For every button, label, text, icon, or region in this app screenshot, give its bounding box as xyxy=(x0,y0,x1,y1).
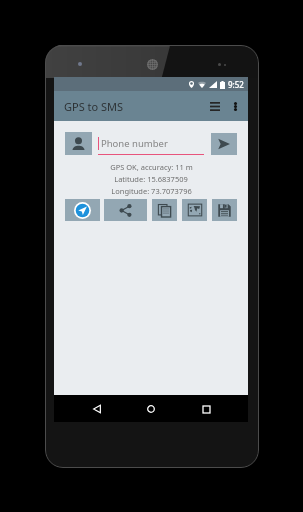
button[interactable]: Recents xyxy=(194,397,218,421)
staticText: GPS OK, accuracy: 11 m xyxy=(110,162,193,172)
button[interactable]: More options xyxy=(226,92,244,120)
staticText: GPS to SMS xyxy=(64,99,124,114)
staticText: Phone number xyxy=(101,137,168,150)
staticText: Longitude: 73.7073796 xyxy=(111,186,192,196)
button[interactable]: History xyxy=(204,92,226,120)
button[interactable]: Send xyxy=(211,133,237,155)
button[interactable]: Pick contact xyxy=(65,132,92,155)
button[interactable]: Copy xyxy=(152,199,177,221)
staticText: Latitude: 15.6837509 xyxy=(114,174,188,184)
button[interactable]: Show on map xyxy=(182,199,207,221)
button[interactable]: Save xyxy=(212,199,237,221)
button[interactable]: Share xyxy=(104,199,147,221)
button[interactable]: Home xyxy=(139,397,163,421)
button[interactable]: Get location xyxy=(65,199,100,221)
button[interactable]: Back xyxy=(85,397,109,421)
staticText: 9:52 xyxy=(228,79,244,90)
